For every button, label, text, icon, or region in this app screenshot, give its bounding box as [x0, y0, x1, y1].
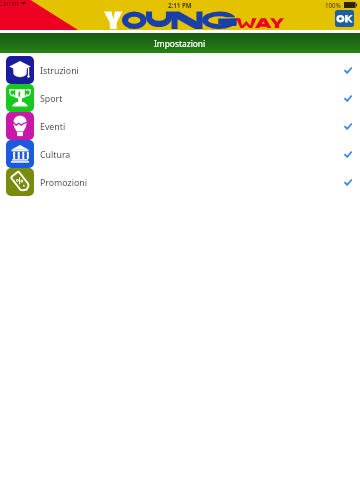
staticText: 100%: [325, 1, 341, 9]
button[interactable]: Sport: [0, 84, 360, 112]
staticText: 2:11 PM: [168, 1, 192, 9]
button[interactable]: OK: [335, 10, 354, 27]
button[interactable]: Promozioni: [0, 168, 360, 196]
staticText: Promozioni: [40, 177, 87, 189]
staticText: Istruzioni: [40, 65, 79, 77]
button[interactable]: Eventi: [0, 112, 360, 140]
button[interactable]: Cultura: [0, 140, 360, 168]
staticText: Cultura: [40, 149, 71, 161]
staticText: Sport: [40, 93, 63, 105]
staticText: Impostazioni: [154, 38, 206, 49]
staticText: Carrier: [0, 0, 20, 7]
button[interactable]: Istruzioni: [0, 56, 360, 84]
staticText: Eventi: [40, 121, 66, 133]
